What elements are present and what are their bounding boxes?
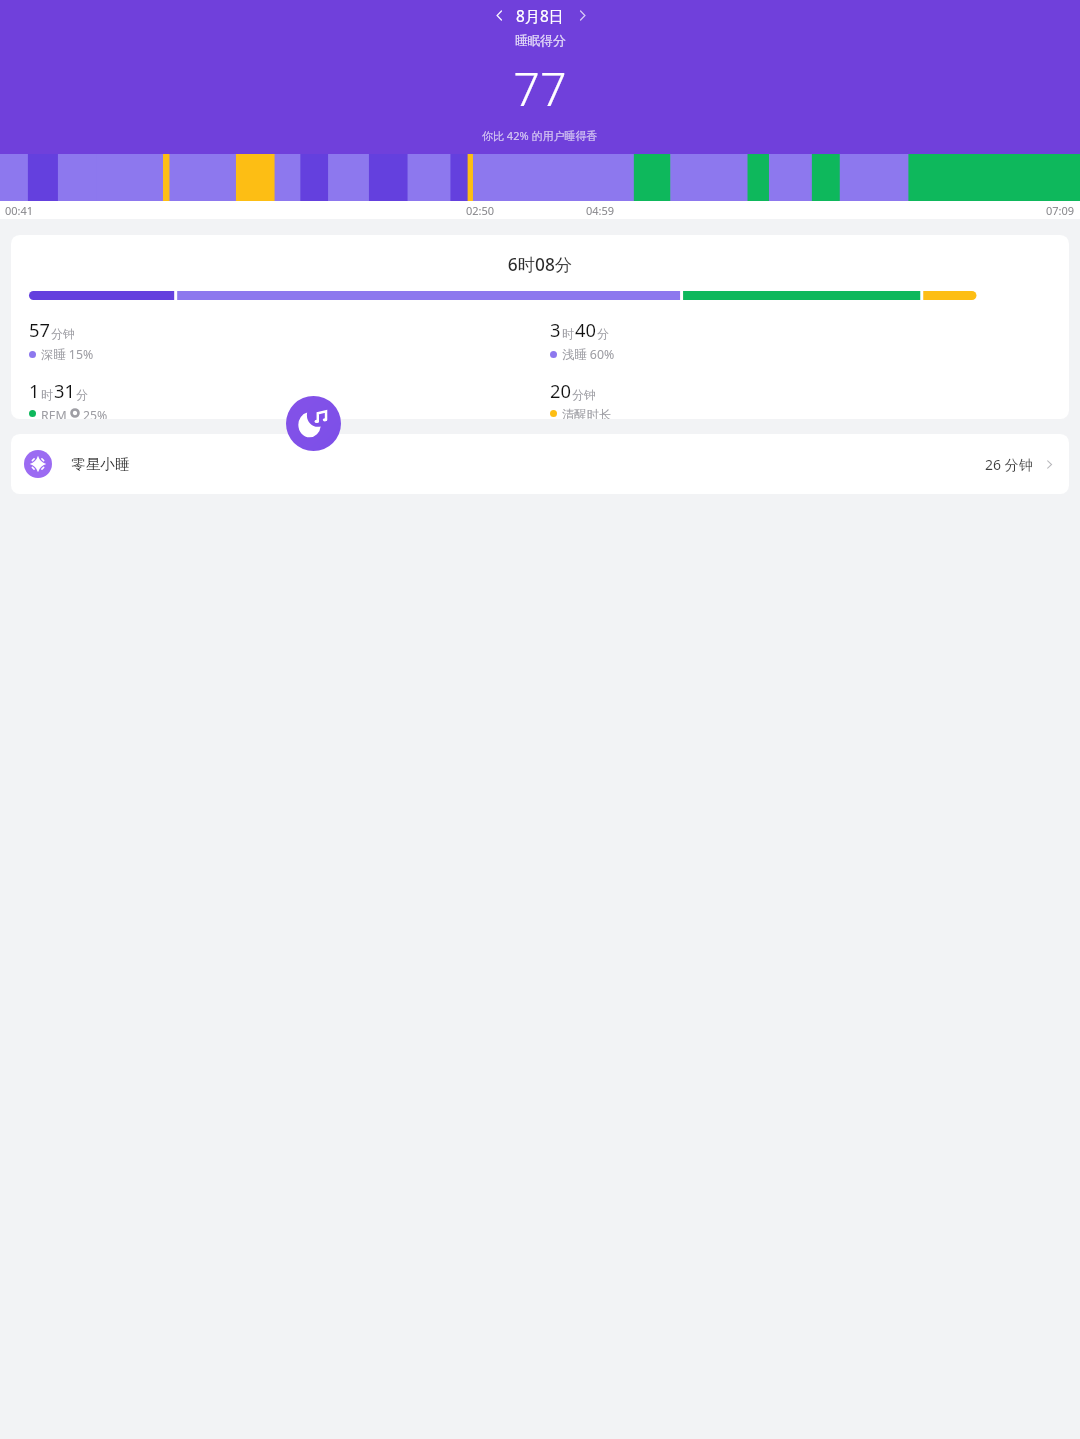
button[interactable]: Next day <box>572 6 592 24</box>
staticText: 26 分钟 <box>985 455 1033 474</box>
staticText: 时 <box>41 387 53 402</box>
button[interactable]: Previous day <box>489 6 509 24</box>
staticText: 07:09 <box>1046 203 1075 218</box>
staticText: 77 <box>513 56 567 120</box>
staticText: 20 <box>550 378 571 403</box>
staticText: 深睡 15% <box>41 346 94 363</box>
staticText: 1 <box>29 378 40 403</box>
button[interactable]: 零星小睡 <box>11 434 1069 494</box>
staticText: 你比 42% 的用户睡得香 <box>482 128 598 143</box>
staticText: 02:50 <box>466 203 495 218</box>
staticText: REM <box>41 407 67 419</box>
staticText: 清醒时长 <box>562 407 612 419</box>
staticText: 00:41 <box>5 203 34 218</box>
button[interactable]: Sleep music <box>286 396 341 451</box>
staticText: 零星小睡 <box>71 455 130 473</box>
staticText: 31 <box>54 378 75 403</box>
staticText: 分钟 <box>51 326 75 341</box>
staticText: 浅睡 60% <box>562 346 615 363</box>
staticText: 6时08分 <box>11 252 1069 276</box>
staticText: 分 <box>76 387 88 402</box>
staticText: 3 <box>550 317 561 342</box>
button[interactable]: 6时08分 <box>11 235 1069 419</box>
staticText: 8月8日 <box>516 6 565 24</box>
staticText: 时 <box>562 326 574 341</box>
staticText: 57 <box>29 317 50 342</box>
staticText: 睡眠得分 <box>515 33 566 49</box>
staticText: 分钟 <box>572 387 596 402</box>
staticText: 40 <box>575 317 596 342</box>
staticText: 25% <box>83 407 108 419</box>
staticText: 分 <box>597 326 609 341</box>
staticText: 04:59 <box>586 203 615 218</box>
